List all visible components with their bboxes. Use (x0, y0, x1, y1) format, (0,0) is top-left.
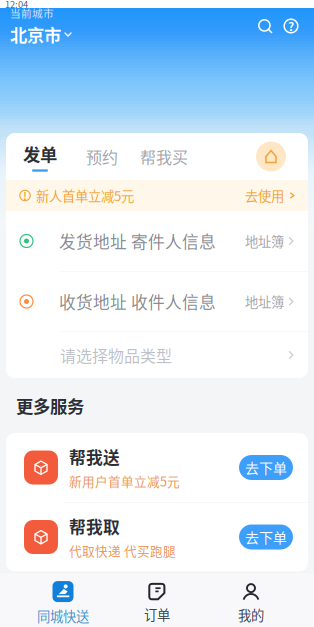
staticText: 当前城市 (10, 5, 54, 21)
button[interactable]: 预约 (71, 134, 133, 178)
staticText: 订单 (144, 605, 170, 624)
staticText: 去下单 (245, 527, 287, 547)
button[interactable]: 帮我取 (6, 502, 308, 571)
staticText: 发单 (23, 141, 57, 166)
staticText: ? (288, 17, 294, 35)
staticText: 代取快递 代买跑腿 (69, 541, 176, 560)
staticText: 请选择物品类型 (60, 343, 172, 367)
staticText: 预约 (86, 145, 118, 168)
staticText: 去下单 (245, 457, 287, 478)
button[interactable]: 发单 (9, 134, 71, 178)
button[interactable]: 请选择物品类型 (6, 332, 308, 378)
staticText: 北京市 (10, 22, 61, 47)
staticText: 去使用 (245, 186, 284, 205)
staticText: 我的 (238, 605, 264, 624)
staticText: ! (23, 188, 27, 203)
button[interactable]: 同城快送 (16, 573, 110, 627)
staticText: 帮我买 (140, 145, 188, 168)
button[interactable]: 帮我送 (6, 433, 308, 502)
staticText: 12:04 (5, 0, 28, 11)
button[interactable]: 我的 (204, 573, 298, 627)
staticText: 发货地址 寄件人信息 (59, 229, 216, 253)
staticText: 帮我送 (69, 445, 120, 469)
staticText: 地址簿 (245, 292, 284, 311)
staticText: 帮我取 (69, 514, 120, 538)
button[interactable]: Help (278, 13, 304, 39)
button[interactable]: 当前城市 (10, 2, 72, 50)
staticText: 新用户首单立减5元 (69, 472, 180, 490)
staticText: 同城快送 (37, 606, 89, 625)
button[interactable]: 收货地址 收件人信息 (6, 271, 308, 331)
staticText: 新人首单立减5元 (36, 186, 134, 205)
staticText: 更多服务 (16, 393, 84, 418)
button[interactable]: 帮我买 (133, 134, 195, 178)
staticText: 收货地址 收件人信息 (59, 289, 216, 313)
staticText: 地址簿 (245, 231, 284, 251)
button[interactable]: 订单 (110, 573, 204, 627)
button[interactable]: ! (6, 180, 308, 211)
button[interactable]: 发货地址 寄件人信息 (6, 211, 308, 271)
button[interactable]: Search (252, 13, 278, 39)
